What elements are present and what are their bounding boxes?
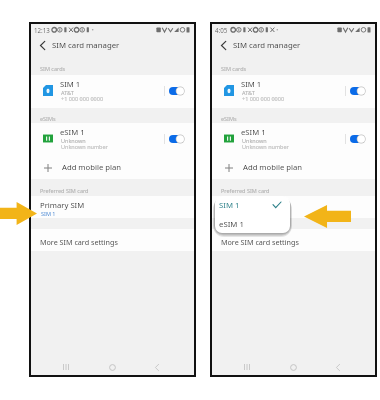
button[interactable]: Toggle SIM 1	[349, 85, 367, 97]
staticText: Unknown number	[61, 143, 108, 150]
staticText: SIM 1	[219, 200, 240, 211]
button[interactable]: Home	[107, 362, 117, 372]
staticText: eSIM 1	[219, 219, 244, 230]
button[interactable]: eSIM 1	[31, 123, 194, 156]
button[interactable]: Primary SIM	[31, 196, 194, 218]
staticText: eSIM 1	[60, 127, 85, 137]
staticText: Primary SIM	[40, 200, 85, 210]
staticText: Add mobile plan	[62, 162, 122, 172]
staticText: SIM cards	[221, 65, 247, 72]
staticText: Unknown	[242, 137, 267, 144]
staticText: SIM 1	[41, 210, 56, 217]
staticText: More SIM card settings	[221, 237, 299, 247]
button[interactable]: Back	[35, 38, 49, 52]
staticText: SIM 1	[60, 79, 81, 89]
staticText: Add mobile plan	[243, 162, 303, 172]
staticText: eSIMs	[221, 115, 237, 122]
button[interactable]: Recents	[242, 362, 252, 372]
button[interactable]: Toggle eSIM 1	[349, 133, 367, 145]
button[interactable]: More SIM card settings	[31, 229, 194, 251]
button[interactable]: Add mobile plan	[212, 157, 375, 179]
staticText: +1 000 000 0000	[242, 95, 285, 102]
staticText: 12:13	[34, 26, 50, 34]
staticText: eSIM 1	[241, 127, 266, 137]
staticText: eSIMs	[40, 115, 56, 122]
button[interactable]: eSIM 1	[215, 215, 290, 232]
button[interactable]: Toggle eSIM 1	[168, 133, 186, 145]
staticText: Unknown	[61, 137, 86, 144]
staticText: Unknown number	[242, 143, 289, 150]
staticText: SIM card manager	[52, 40, 120, 51]
staticText: Preferred SIM card	[40, 187, 89, 194]
staticText: SIM 1	[241, 79, 262, 89]
button[interactable]: eSIM 1	[212, 123, 375, 156]
button[interactable]: SIM 1	[31, 75, 194, 108]
staticText: More SIM card settings	[40, 237, 118, 247]
staticText: +1 000 000 0000	[61, 95, 104, 102]
staticText: AT&T	[61, 89, 74, 96]
staticText: 4:05	[215, 26, 228, 34]
button[interactable]: Recents	[61, 362, 71, 372]
button[interactable]: Back	[152, 362, 162, 372]
button[interactable]: Back	[216, 38, 230, 52]
button[interactable]: SIM 1	[215, 196, 290, 213]
staticText: SIM card manager	[233, 40, 301, 51]
button[interactable]: SIM 1	[212, 75, 375, 108]
staticText: Preferred SIM card	[221, 187, 270, 194]
staticText: AT&T	[242, 89, 255, 96]
staticText: SIM cards	[40, 65, 66, 72]
button[interactable]: Back	[333, 362, 343, 372]
button[interactable]: Home	[288, 362, 298, 372]
button[interactable]: Toggle SIM 1	[168, 85, 186, 97]
button[interactable]: Add mobile plan	[31, 157, 194, 179]
button[interactable]: More SIM card settings	[212, 229, 375, 251]
